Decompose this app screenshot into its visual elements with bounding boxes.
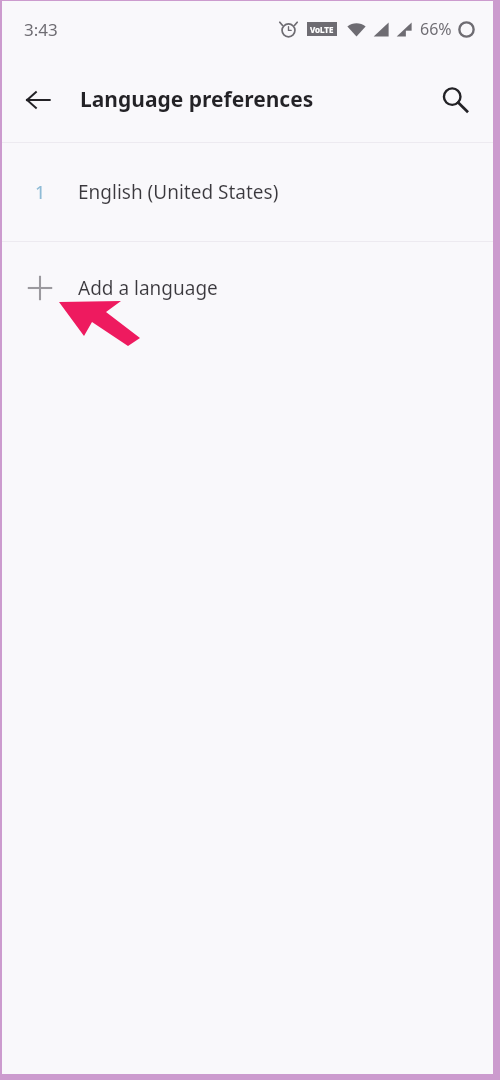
button[interactable]: Add a language (2, 242, 493, 334)
button[interactable]: Search (429, 74, 481, 126)
button[interactable]: Back (12, 74, 64, 126)
staticText: English (United States) (78, 179, 279, 205)
staticText: Add a language (78, 275, 218, 301)
staticText: Language preferences (80, 85, 314, 114)
button[interactable]: 1 (2, 143, 493, 241)
staticText: 1 (35, 180, 46, 205)
staticText: VoLTE (310, 24, 334, 35)
staticText: 66% (420, 18, 452, 40)
staticText: 3:43 (24, 18, 58, 41)
